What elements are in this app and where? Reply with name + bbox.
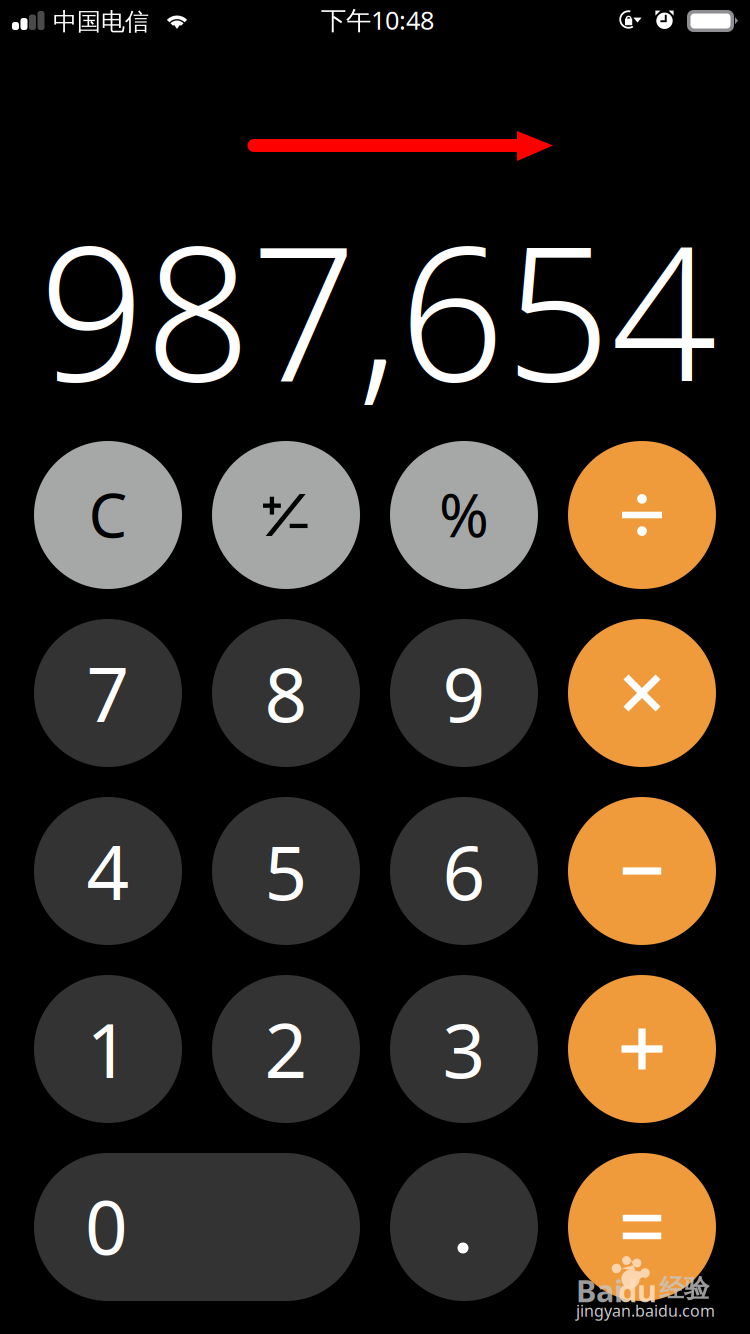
button[interactable]: 9 (390, 619, 538, 767)
button[interactable]: Decimal point (390, 1153, 538, 1301)
button[interactable]: Divide (568, 441, 716, 589)
staticText: 9 (442, 643, 485, 743)
staticText: C (88, 473, 127, 555)
button[interactable]: % (390, 441, 538, 589)
staticText: Bai (576, 1270, 623, 1311)
staticText: du (618, 1270, 657, 1311)
button[interactable]: Multiply (568, 619, 716, 767)
button[interactable]: 5 (212, 797, 360, 945)
button[interactable]: Equals (568, 1153, 716, 1301)
button[interactable]: Toggle sign (212, 441, 360, 589)
staticText: 987,654 (39, 186, 717, 432)
button[interactable]: 6 (390, 797, 538, 945)
button[interactable]: 3 (390, 975, 538, 1123)
staticText: 4 (86, 821, 129, 921)
button[interactable]: Plus (568, 975, 716, 1123)
staticText: % (439, 474, 489, 554)
staticText: 0 (85, 1176, 128, 1275)
staticText: 经验 (659, 1273, 709, 1304)
button[interactable]: 2 (212, 975, 360, 1123)
staticText: 5 (264, 821, 307, 921)
staticText: 中国电信 (53, 7, 149, 36)
staticText: 1 (86, 999, 129, 1099)
staticText: 6 (442, 821, 485, 921)
button[interactable]: 7 (34, 619, 182, 767)
button[interactable]: 8 (212, 619, 360, 767)
button[interactable]: 1 (34, 975, 182, 1123)
staticText: 2 (264, 999, 307, 1099)
staticText: 8 (264, 643, 307, 743)
staticText: 7 (86, 643, 129, 743)
button[interactable]: C (34, 441, 182, 589)
button[interactable]: 4 (34, 797, 182, 945)
button[interactable]: 0 (34, 1153, 360, 1301)
staticText: 下午10:48 (321, 3, 434, 37)
button[interactable]: Minus (568, 797, 716, 945)
staticText: jingyan.baidu.com (576, 1300, 715, 1321)
staticText: 3 (442, 999, 485, 1099)
